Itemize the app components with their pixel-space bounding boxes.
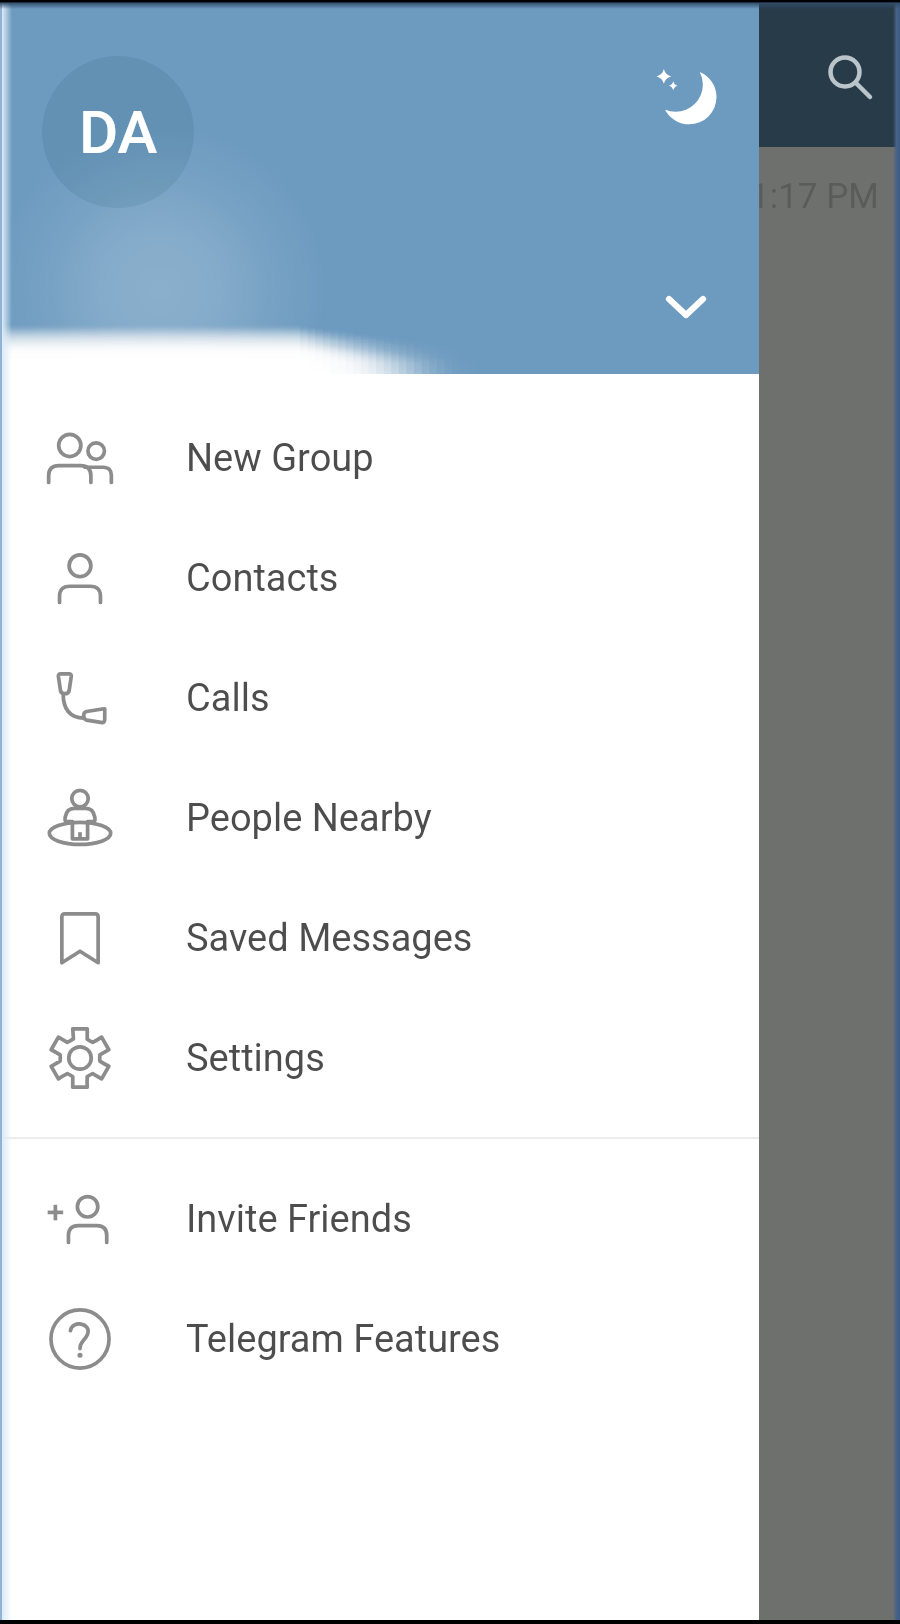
button[interactable]: Expand accounts: [640, 260, 732, 352]
button[interactable]: Contacts: [0, 518, 759, 638]
staticText: People Nearby: [186, 796, 432, 841]
staticText: 1:17 PM: [750, 176, 879, 217]
button[interactable]: Invite Friends: [0, 1159, 759, 1279]
staticText: DA: [79, 97, 158, 167]
button[interactable]: Telegram Features: [0, 1279, 759, 1399]
staticText: Settings: [186, 1036, 325, 1081]
staticText: New Group: [186, 436, 374, 481]
button[interactable]: Account header: [0, 0, 759, 374]
button[interactable]: Settings: [0, 998, 759, 1118]
button[interactable]: Close navigation drawer: [0, 147, 900, 1624]
button[interactable]: People Nearby: [0, 758, 759, 878]
staticText: Saved Messages: [186, 916, 473, 961]
button[interactable]: Calls: [0, 638, 759, 758]
button[interactable]: Saved Messages: [0, 878, 759, 998]
button[interactable]: Search: [805, 32, 885, 112]
staticText: Invite Friends: [186, 1197, 412, 1242]
staticText: Contacts: [186, 556, 339, 601]
staticText: Calls: [186, 676, 270, 721]
button[interactable]: New Group: [0, 398, 759, 518]
button[interactable]: Night mode: [638, 44, 732, 138]
staticText: Telegram Features: [186, 1317, 501, 1362]
